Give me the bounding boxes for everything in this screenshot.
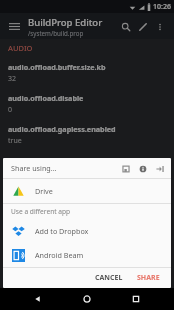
button[interactable]: Details — [136, 162, 149, 175]
button[interactable]: Home — [76, 288, 98, 310]
button[interactable]: Back — [27, 288, 49, 310]
button[interactable]: SHARE — [132, 270, 165, 286]
staticText: 32 — [8, 74, 17, 84]
button[interactable]: Android Beam — [3, 243, 171, 267]
staticText: BuildProp Editor — [28, 16, 103, 29]
staticText: audio.offload.gapless.enabled — [8, 124, 116, 134]
staticText: 10:26 — [153, 2, 171, 12]
button[interactable]: Drive — [3, 179, 171, 203]
staticText: audio.offload.buffer.size.kb — [8, 62, 106, 72]
button[interactable]: Recent apps — [125, 288, 147, 310]
staticText: Drive — [35, 186, 53, 196]
button[interactable]: More options — [151, 18, 168, 35]
staticText: AUDIO — [8, 43, 33, 53]
staticText: audio.offload.disable — [8, 93, 84, 103]
staticText: Share using... — [11, 163, 57, 173]
staticText: audio.safemedia.force — [8, 155, 88, 165]
button[interactable]: Search — [117, 18, 134, 35]
staticText: Android Beam — [35, 250, 84, 260]
staticText: true — [8, 136, 22, 146]
button[interactable]: Edit — [134, 18, 151, 35]
button[interactable]: CANCEL — [90, 270, 128, 286]
staticText: CANCEL — [95, 273, 123, 283]
button[interactable]: Add to Dropbox — [3, 219, 171, 243]
staticText: Add to Dropbox — [35, 226, 89, 236]
button[interactable]: Save to device — [119, 162, 132, 175]
button[interactable]: Open navigation drawer — [6, 18, 22, 34]
staticText: 0 — [8, 105, 13, 115]
staticText: true — [8, 167, 22, 177]
staticText: /system/build.prop — [28, 29, 84, 37]
button[interactable]: Send — [153, 162, 166, 175]
staticText: Use a different app — [11, 207, 71, 216]
staticText: SHARE — [137, 273, 160, 283]
